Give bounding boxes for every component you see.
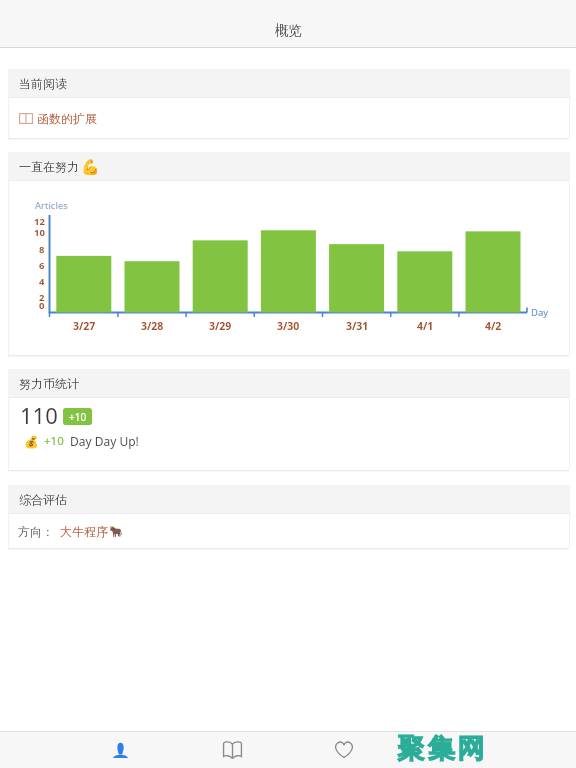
staticText: 一直在努力 — [19, 159, 79, 174]
staticText: 3/28 — [141, 319, 164, 333]
button[interactable]: Library — [176, 731, 288, 768]
staticText: 概览 — [275, 22, 302, 39]
staticText: 3/30 — [277, 319, 300, 333]
staticText: Day Day Up! — [70, 433, 139, 449]
staticText: 🐂 — [109, 525, 123, 538]
staticText: +10 — [69, 410, 87, 424]
staticText: 12 — [34, 215, 45, 227]
staticText: 3/27 — [73, 319, 96, 333]
staticText: 当前阅读 — [19, 76, 67, 91]
staticText: 综合评估 — [19, 492, 67, 507]
staticText: 2 — [39, 291, 45, 303]
staticText: Day — [531, 306, 549, 319]
button[interactable]: More — [400, 731, 512, 768]
staticText: 4 — [39, 275, 45, 287]
staticText: 4/1 — [417, 319, 434, 333]
staticText: 3/31 — [346, 319, 369, 333]
staticText: 💰 — [24, 435, 39, 449]
staticText: +10 — [44, 433, 64, 449]
button[interactable]: 函数的扩展 — [8, 98, 569, 138]
staticText: 10 — [34, 226, 45, 238]
staticText: 110 — [20, 400, 58, 430]
button[interactable]: 方向： — [8, 514, 569, 548]
staticText: 聚集网 — [396, 732, 486, 766]
staticText: 方向： — [18, 524, 54, 539]
staticText: 6 — [39, 259, 45, 271]
staticText: 💪 — [81, 158, 100, 176]
button[interactable]: Favorites — [288, 731, 400, 768]
staticText: 努力币统计 — [19, 376, 79, 391]
staticText: 3/29 — [209, 319, 232, 333]
staticText: Articles — [35, 199, 68, 212]
staticText: 函数的扩展 — [37, 111, 97, 126]
button[interactable]: Profile — [64, 731, 176, 768]
staticText: 4/2 — [485, 319, 502, 333]
staticText: 大牛程序 — [60, 524, 108, 539]
staticText: 8 — [39, 243, 45, 255]
staticText: 0 — [39, 299, 45, 311]
